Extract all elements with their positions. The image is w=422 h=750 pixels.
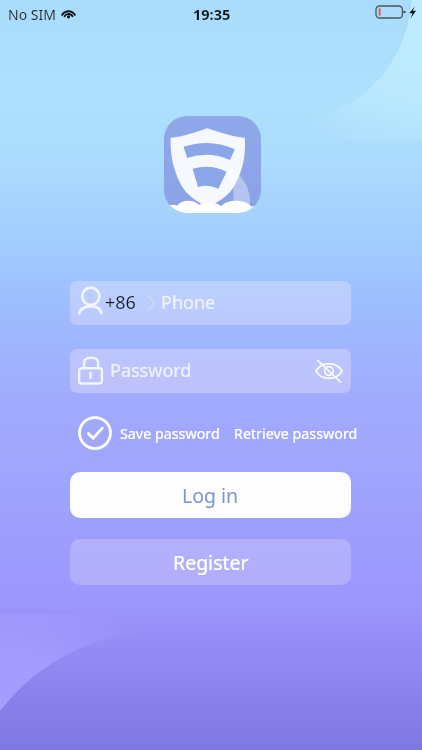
staticText: Register	[173, 549, 249, 576]
staticText: Save password	[120, 424, 220, 443]
staticText: No SIM	[8, 5, 56, 24]
staticText: Log in	[182, 482, 239, 509]
staticText: +86	[105, 290, 136, 315]
button[interactable]: Password	[70, 349, 351, 393]
staticText: 19:35	[193, 4, 231, 24]
button[interactable]: Register	[70, 539, 351, 585]
button[interactable]: Show password	[312, 354, 346, 388]
button[interactable]: Retrieve password	[234, 424, 358, 443]
button[interactable]: +86	[70, 281, 351, 325]
staticText: Password	[110, 358, 192, 383]
button[interactable]: Save password	[78, 416, 220, 450]
staticText: Phone	[161, 290, 216, 315]
staticText: Retrieve password	[234, 424, 358, 443]
button[interactable]: Log in	[70, 472, 351, 518]
